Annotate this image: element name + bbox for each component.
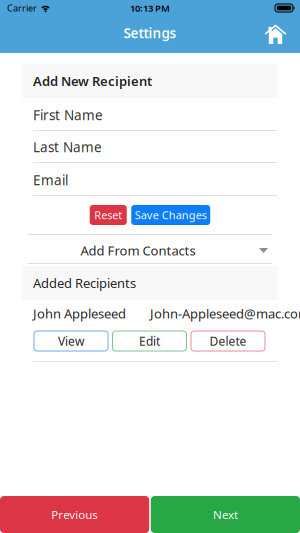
- textField[interactable]: Last Name: [33, 138, 277, 156]
- staticText: View: [58, 333, 84, 349]
- staticText: Delete: [209, 333, 246, 349]
- staticText: Settings: [123, 24, 176, 42]
- button[interactable]: Edit: [112, 331, 186, 351]
- button[interactable]: Add From Contacts: [0, 234, 300, 264]
- staticText: First Name: [33, 106, 103, 124]
- staticText: Next: [213, 507, 238, 522]
- staticText: Last Name: [33, 138, 102, 156]
- staticText: Save Changes: [135, 208, 207, 222]
- textField[interactable]: Email: [33, 171, 277, 189]
- textField[interactable]: First Name: [33, 106, 277, 124]
- button[interactable]: Next: [151, 496, 300, 533]
- staticText: Add From Contacts: [80, 242, 195, 259]
- button[interactable]: Delete: [191, 331, 265, 351]
- staticText: Carrier: [7, 2, 37, 14]
- staticText: Email: [33, 171, 68, 189]
- button[interactable]: Previous: [0, 496, 149, 533]
- staticText: Previous: [51, 507, 98, 522]
- staticText: Edit: [139, 333, 160, 349]
- button[interactable]: Save Changes: [131, 205, 210, 225]
- button[interactable]: Home: [264, 24, 287, 44]
- staticText: Added Recipients: [33, 274, 136, 292]
- staticText: John-Appleseed@mac.com: [150, 305, 300, 322]
- staticText: John Appleseed: [33, 305, 126, 322]
- button[interactable]: View: [34, 331, 108, 351]
- staticText: Reset: [94, 208, 122, 222]
- button[interactable]: Reset: [90, 205, 127, 225]
- staticText: 10:13 PM: [130, 2, 170, 14]
- staticText: Add New Recipient: [33, 72, 152, 90]
